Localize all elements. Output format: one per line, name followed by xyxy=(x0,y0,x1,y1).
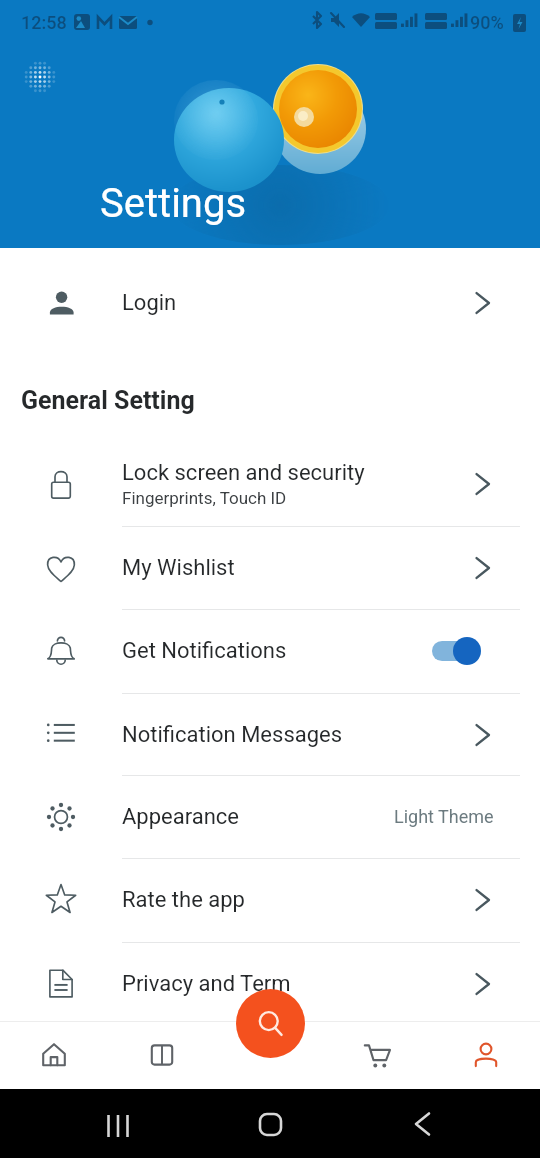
staticText: Light Theme xyxy=(394,806,494,827)
staticText: 12:58 xyxy=(21,12,67,33)
button[interactable]: Notification Messages xyxy=(0,693,540,776)
staticText: Get Notifications xyxy=(122,638,287,664)
button[interactable]: Privacy and Term xyxy=(0,942,540,1025)
staticText: Fingerprints, Touch ID xyxy=(122,488,287,508)
staticText: 90% xyxy=(470,12,504,33)
button[interactable]: Categories xyxy=(108,1021,216,1089)
staticText: My Wishlist xyxy=(122,555,235,581)
button[interactable]: Cart xyxy=(324,1021,432,1089)
button[interactable]: Profile xyxy=(432,1021,540,1089)
staticText: Login xyxy=(122,290,177,316)
button[interactable]: Home xyxy=(0,1021,108,1089)
button[interactable]: Search xyxy=(236,989,305,1058)
staticText: Privacy and Term xyxy=(122,971,291,997)
staticText: Rate the app xyxy=(122,887,245,913)
staticText: Lock screen and security xyxy=(122,460,365,486)
staticText: General Setting xyxy=(21,386,195,415)
button[interactable]: My Wishlist xyxy=(0,526,540,609)
button[interactable]: Get Notifications xyxy=(0,609,540,692)
button[interactable]: Lock screen and security xyxy=(0,442,540,525)
button[interactable]: Rate the app xyxy=(0,858,540,941)
staticText: Settings xyxy=(100,180,247,227)
staticText: Appearance xyxy=(122,804,240,830)
button[interactable]: Appearance xyxy=(0,775,540,858)
staticText: Notification Messages xyxy=(122,722,343,748)
button[interactable]: Login xyxy=(0,262,540,344)
